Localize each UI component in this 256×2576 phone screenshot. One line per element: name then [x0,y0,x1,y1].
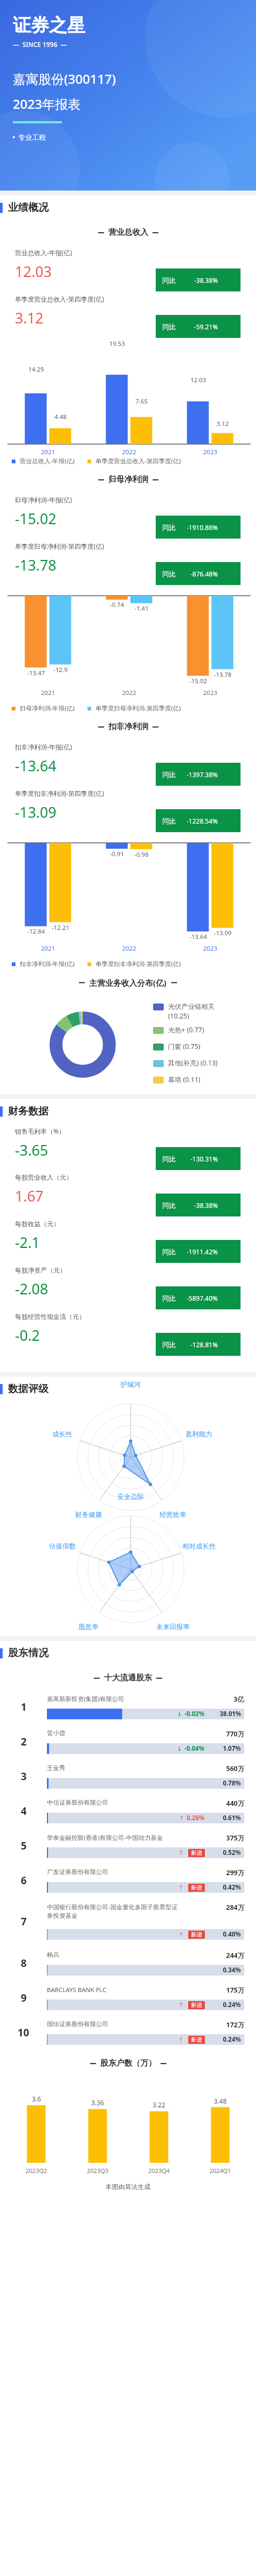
button[interactable]: 6 [0,1864,256,1899]
button[interactable]: 同比 [156,1240,241,1263]
staticText: -876.48% [190,570,218,578]
staticText: 嘉寓新新投资(集团)有限公司 [47,1695,124,1703]
staticText: 同比 [162,1294,176,1302]
staticText: 扣非净利润 [108,722,148,732]
staticText: -1397.38% [187,770,218,779]
staticText: 175万 [226,1986,244,1995]
staticText: -2.08 [15,1279,49,1299]
staticText: 营业总收入-年报(亿) [15,248,73,257]
button[interactable]: 3 [0,1760,256,1795]
button[interactable]: 7 [0,1899,256,1947]
staticText: 2024Q1 [210,2167,231,2175]
button[interactable]: 同比 [156,516,241,539]
staticText: 2023 [203,689,218,697]
button[interactable]: 数据评级 [0,1377,256,1401]
staticText: 560万 [226,1764,244,1773]
staticText: -2.1 [15,1232,40,1252]
staticText: 同比 [162,770,176,779]
button[interactable]: 10 [0,2016,256,2051]
staticText: 0.24% [223,2001,241,2009]
staticText: 单季度扣非净利润-第四季度(亿) [95,960,181,968]
staticText: 股息率 [78,1623,99,1631]
button[interactable]: 同比 [156,268,241,291]
button[interactable]: 4 [0,1795,256,1829]
staticText: 门窗 (0.75) [168,1042,237,1051]
button[interactable]: 8 [0,1947,256,1981]
staticText: 股东情况 [8,1647,49,1660]
staticText: -0.04% [185,1744,205,1753]
staticText: 单季度归母净利润-第四季度(亿) [95,704,181,713]
staticText: 嘉寓股份(300117) [13,70,116,88]
staticText: -13.78 [15,555,57,575]
button[interactable]: 同比 [156,1286,241,1309]
button[interactable]: 同比 [156,763,241,786]
staticText: 新进 [191,2036,202,2043]
staticText: 财务健康 [75,1511,102,1519]
staticText: 2021 [41,944,55,953]
staticText: 同比 [162,1201,176,1210]
staticText: 3亿 [234,1695,244,1704]
staticText: -12.84 [27,927,45,936]
staticText: 股东户数（万） [100,2058,156,2068]
staticText: 新进 [191,1850,202,1856]
staticText: 0.24% [223,2035,241,2044]
button[interactable]: 股东情况 [0,1641,256,1665]
staticText: 证券之星 [13,14,85,37]
staticText: ↑ [179,2002,184,2009]
staticText: 营业总收入 [108,227,148,238]
staticText: 2022 [122,944,137,953]
staticText: 单季度归母净利润-第四季度(亿) [15,542,105,550]
staticText: 每股净资产（元） [15,1266,66,1274]
staticText: 0.26% [187,1814,205,1822]
staticText: 王金秀 [47,1764,66,1772]
staticText: -5897.40% [187,1294,218,1302]
staticText: 12.03 [190,376,206,384]
button[interactable]: 业绩概况 [0,195,256,220]
staticText: -59.21% [194,322,218,331]
button[interactable]: 1 [0,1690,256,1725]
staticText: 2 [21,1735,27,1749]
staticText: 十大流通股东 [104,1673,152,1683]
staticText: 38.01% [220,1710,241,1718]
staticText: 同比 [162,1155,176,1163]
button[interactable]: 同比 [156,562,241,585]
staticText: -13.09 [15,802,57,822]
button[interactable]: 同比 [156,1147,241,1170]
button[interactable]: 2 [0,1725,256,1760]
button[interactable]: 同比 [156,1333,241,1356]
staticText: 归母净利润 [108,475,148,485]
button[interactable]: 财务数据 [0,1099,256,1124]
staticText: -13.09 [214,929,232,937]
staticText: 375万 [226,1834,244,1843]
staticText: 440万 [226,1799,244,1808]
staticText: BARCLAYS BANK PLC [47,1986,107,1994]
staticText: 同比 [162,523,176,532]
staticText: 2021 [41,448,55,456]
staticText: 雷小霞 [47,1729,66,1737]
button[interactable]: 同比 [156,1194,241,1216]
staticText: 扣非净利润-年报(亿) [20,960,75,968]
staticText: 同比 [162,1340,176,1349]
staticText: 6 [21,1874,27,1887]
button[interactable]: 9 [0,1981,256,2016]
staticText: 安全边际 [117,1492,144,1501]
staticText: 2023Q3 [87,2167,109,2175]
staticText: 4 [21,1804,27,1818]
button[interactable]: 同比 [156,315,241,338]
staticText: 业绩概况 [8,201,49,214]
staticText: 营业总收入-年报(亿) [20,457,75,465]
staticText: 单季度营业总收入-第四季度(亿) [95,457,181,465]
button[interactable]: 同比 [156,809,241,832]
staticText: 每股营业收入（元） [15,1173,73,1181]
staticText: 3.6 [32,2095,41,2103]
staticText: -0.91 [110,850,124,858]
staticText: 3 [21,1769,27,1783]
staticText: -15.02 [189,677,207,685]
staticText: 单季度扣非净利润-第四季度(亿) [15,789,105,797]
staticText: 12.03 [15,262,52,281]
staticText: 同比 [162,817,176,825]
staticText: 护城河 [121,1380,141,1389]
staticText: 8 [21,1956,27,1970]
staticText: — SINCE 1996 — [13,40,67,49]
button[interactable]: 5 [0,1829,256,1864]
